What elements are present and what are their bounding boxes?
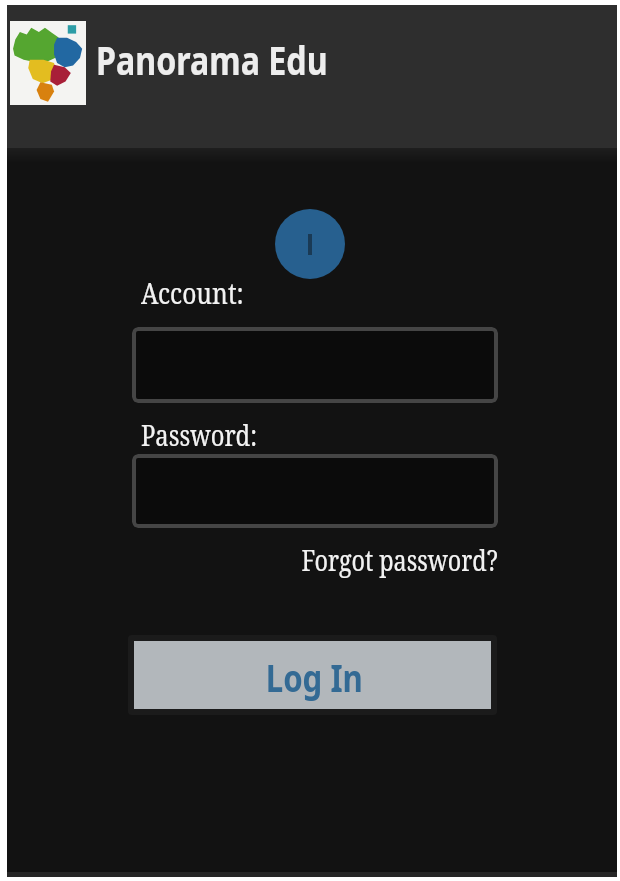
staticText: Panorama Edu (96, 33, 328, 86)
button[interactable] (132, 454, 498, 528)
button[interactable] (10, 21, 86, 105)
staticText: Log In (266, 651, 363, 703)
button[interactable] (132, 327, 498, 403)
staticText: Account: (141, 273, 244, 312)
button[interactable]: Forgot password? (302, 540, 498, 579)
button[interactable]: Log In (134, 641, 491, 709)
staticText: Password: (141, 415, 257, 454)
